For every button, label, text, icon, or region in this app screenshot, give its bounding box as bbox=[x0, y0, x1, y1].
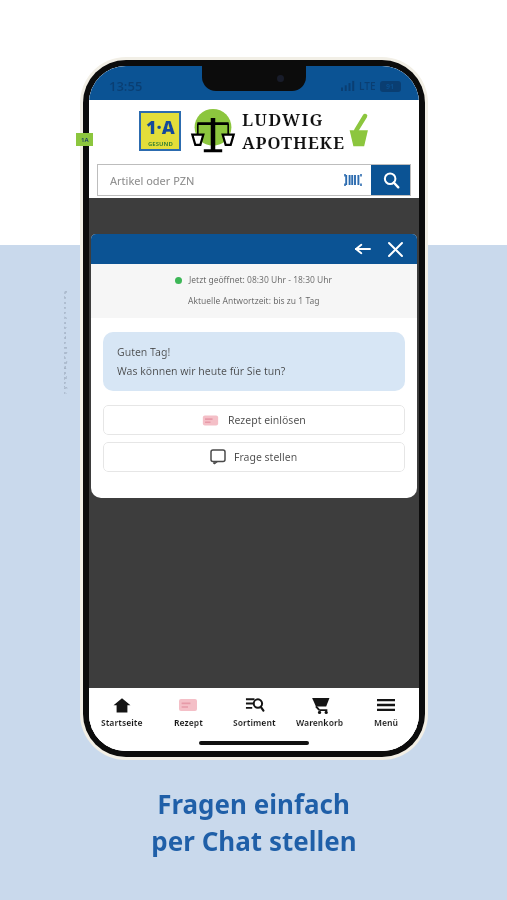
staticText: 13:55 bbox=[109, 77, 143, 95]
button[interactable]: Zurück bbox=[351, 237, 375, 261]
staticText: Artikel oder PZN bbox=[110, 173, 195, 188]
staticText: Rezept bbox=[174, 717, 203, 729]
button[interactable]: Warenkorb bbox=[287, 688, 353, 734]
button[interactable]: Artikel oder PZN bbox=[97, 164, 411, 196]
staticText: APOTHEKE bbox=[242, 131, 345, 154]
staticText: iPhone is a trademark of Apple Inc. bbox=[64, 290, 68, 395]
staticText: Menü bbox=[374, 717, 399, 729]
button[interactable]: Menü bbox=[353, 688, 419, 734]
staticText: Fragen einfach bbox=[157, 786, 350, 821]
staticText: GESUND bbox=[148, 140, 173, 148]
staticText: Warenkorb bbox=[296, 717, 344, 729]
staticText: per Chat stellen bbox=[151, 823, 357, 858]
staticText: Jetzt geöffnet: 08:30 Uhr - 18:30 Uhr bbox=[189, 274, 333, 286]
staticText: Frage stellen bbox=[234, 450, 298, 464]
button[interactable]: Startseite bbox=[89, 688, 155, 734]
button[interactable]: Suchen bbox=[371, 164, 411, 196]
button[interactable]: Schließen bbox=[383, 237, 407, 261]
staticText: Guten Tag! bbox=[117, 345, 171, 359]
staticText: Rezept einlösen bbox=[228, 413, 306, 427]
staticText: Sortiment bbox=[233, 717, 276, 729]
other: Barcode scannen bbox=[343, 172, 363, 188]
staticText: Was können wir heute für Sie tun? bbox=[117, 364, 286, 378]
staticText: LUDWIG bbox=[242, 108, 324, 131]
button[interactable]: Rezept einlösen bbox=[103, 405, 405, 435]
staticText: 1·A bbox=[146, 115, 175, 140]
staticText: Aktuelle Antwortzeit: bis zu 1 Tag bbox=[188, 295, 320, 307]
staticText: LTE bbox=[359, 79, 376, 93]
staticText: Startseite bbox=[101, 717, 143, 729]
button[interactable]: Rezept bbox=[155, 688, 221, 734]
button[interactable]: Sortiment bbox=[221, 688, 287, 734]
button[interactable]: Frage stellen bbox=[103, 442, 405, 472]
staticText: 91 bbox=[386, 82, 395, 92]
staticText: 1A bbox=[81, 136, 89, 144]
